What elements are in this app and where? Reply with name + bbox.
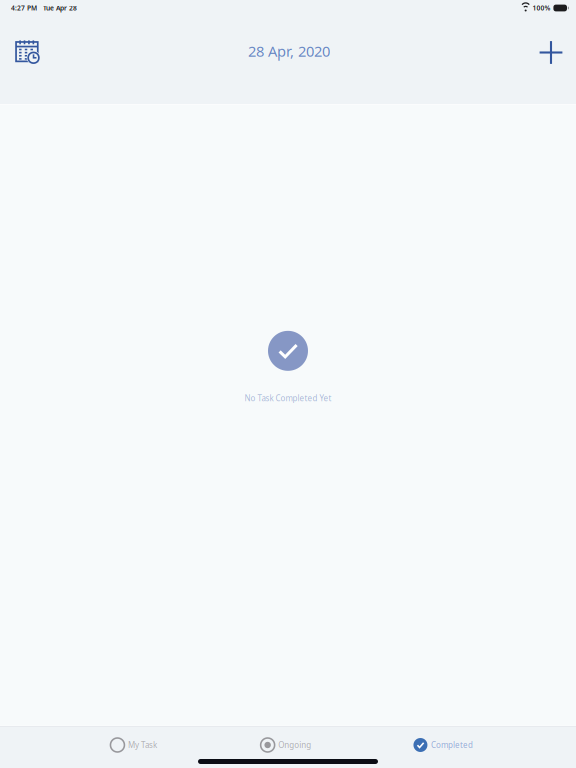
staticText: Completed <box>431 740 473 750</box>
staticText: Tue Apr 28 <box>43 4 77 12</box>
staticText: My Task <box>128 740 157 750</box>
button[interactable]: Schedule <box>6 31 48 73</box>
staticText: Ongoing <box>278 740 311 750</box>
button[interactable]: Completed <box>413 731 473 759</box>
button[interactable]: Ongoing <box>261 731 311 759</box>
staticText: 4:27 PM <box>11 4 37 12</box>
staticText: 28 Apr, 2020 <box>248 41 330 61</box>
button[interactable]: Add Task <box>530 31 572 73</box>
staticText: 100% <box>532 4 550 12</box>
staticText: No Task Completed Yet <box>244 393 331 403</box>
button[interactable]: My Task <box>110 731 157 759</box>
